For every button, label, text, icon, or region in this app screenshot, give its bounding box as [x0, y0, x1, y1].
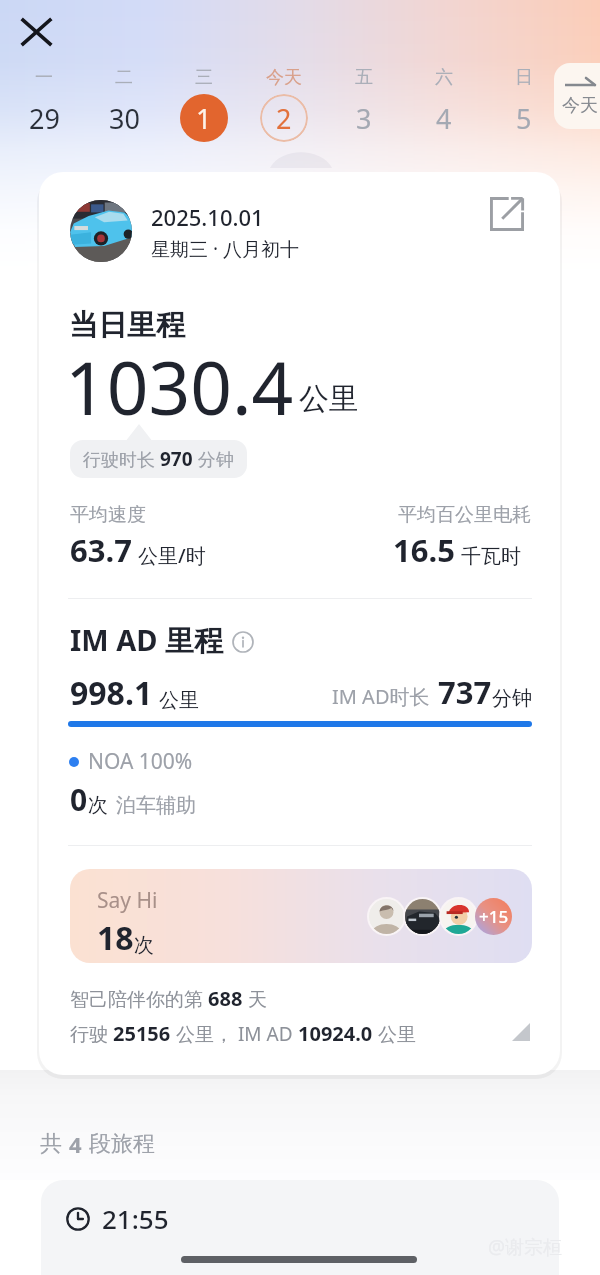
- staticText: 63.7: [70, 529, 132, 571]
- staticText: 次: [134, 933, 154, 958]
- staticText: 千瓦时: [461, 544, 521, 569]
- staticText: 智己陪伴你的第: [70, 986, 208, 1012]
- staticText: 当日里程: [69, 307, 185, 344]
- staticText: 1: [196, 100, 212, 137]
- staticText: 30: [109, 100, 140, 137]
- staticText: 行驶: [70, 1021, 113, 1047]
- button[interactable]: 一: [10, 66, 78, 150]
- staticText: NOA 100%: [88, 747, 193, 776]
- staticText: 五: [355, 66, 373, 89]
- staticText: Say Hi: [97, 886, 158, 915]
- staticText: 一: [35, 66, 53, 89]
- button[interactable]: 行驶时长: [70, 440, 247, 478]
- staticText: +15: [479, 905, 509, 928]
- staticText: 分钟: [193, 447, 234, 472]
- staticText: 0: [70, 779, 88, 820]
- staticText: IM AD 里程: [70, 620, 224, 660]
- staticText: @谢宗桓: [488, 1234, 563, 1260]
- button[interactable]: 今天: [250, 66, 318, 150]
- staticText: 次: [88, 793, 108, 818]
- staticText: 今天: [266, 66, 302, 89]
- staticText: 六: [435, 66, 453, 89]
- staticText: 4: [69, 1129, 82, 1159]
- staticText: 平均百公里电耗: [398, 503, 531, 527]
- button[interactable]: 日: [490, 66, 558, 150]
- staticText: 29: [29, 100, 60, 137]
- staticText: 18: [97, 916, 134, 960]
- staticText: 三: [195, 66, 213, 89]
- staticText: 16.5: [393, 529, 455, 571]
- staticText: 21:55: [102, 1201, 169, 1236]
- staticText: 公里， IM AD: [171, 1021, 298, 1047]
- staticText: 10924.0: [298, 1020, 373, 1047]
- staticText: 737: [438, 671, 492, 713]
- staticText: 星期三 · 八月初十: [151, 236, 299, 262]
- button[interactable]: 五: [330, 66, 398, 150]
- staticText: 天: [243, 986, 267, 1012]
- staticText: 970: [160, 446, 193, 472]
- staticText: 平均速度: [70, 503, 146, 527]
- staticText: 688: [208, 985, 243, 1012]
- button[interactable]: 三: [170, 66, 238, 150]
- button[interactable]: Jump to today: [554, 63, 600, 129]
- staticText: 行驶时长: [83, 447, 160, 472]
- staticText: 4: [436, 100, 452, 137]
- button[interactable]: 六: [410, 66, 478, 150]
- staticText: 5: [516, 100, 532, 137]
- button[interactable]: 21:55: [41, 1180, 559, 1275]
- staticText: 二: [115, 66, 133, 89]
- staticText: 今天: [562, 94, 598, 117]
- staticText: 段旅程: [89, 1130, 155, 1158]
- staticText: 分钟: [492, 686, 532, 711]
- staticText: 1030.4: [65, 337, 294, 436]
- staticText: 998.1: [70, 671, 153, 715]
- staticText: 2: [276, 100, 292, 137]
- button[interactable]: 二: [90, 66, 158, 150]
- staticText: 公里: [373, 1021, 416, 1047]
- staticText: 2025.10.01: [151, 202, 264, 232]
- button[interactable]: Say Hi: [70, 869, 532, 963]
- staticText: 公里/时: [138, 542, 206, 569]
- staticText: 公里: [159, 688, 199, 713]
- staticText: 公里: [299, 380, 359, 418]
- staticText: 日: [515, 66, 533, 89]
- staticText: IM AD时长: [332, 683, 430, 710]
- staticText: 共: [40, 1130, 62, 1158]
- button[interactable]: Close: [12, 8, 60, 56]
- staticText: 泊车辅助: [116, 793, 196, 818]
- button[interactable]: Share: [487, 194, 527, 234]
- staticText: 3: [356, 100, 372, 137]
- staticText: 25156: [113, 1020, 171, 1047]
